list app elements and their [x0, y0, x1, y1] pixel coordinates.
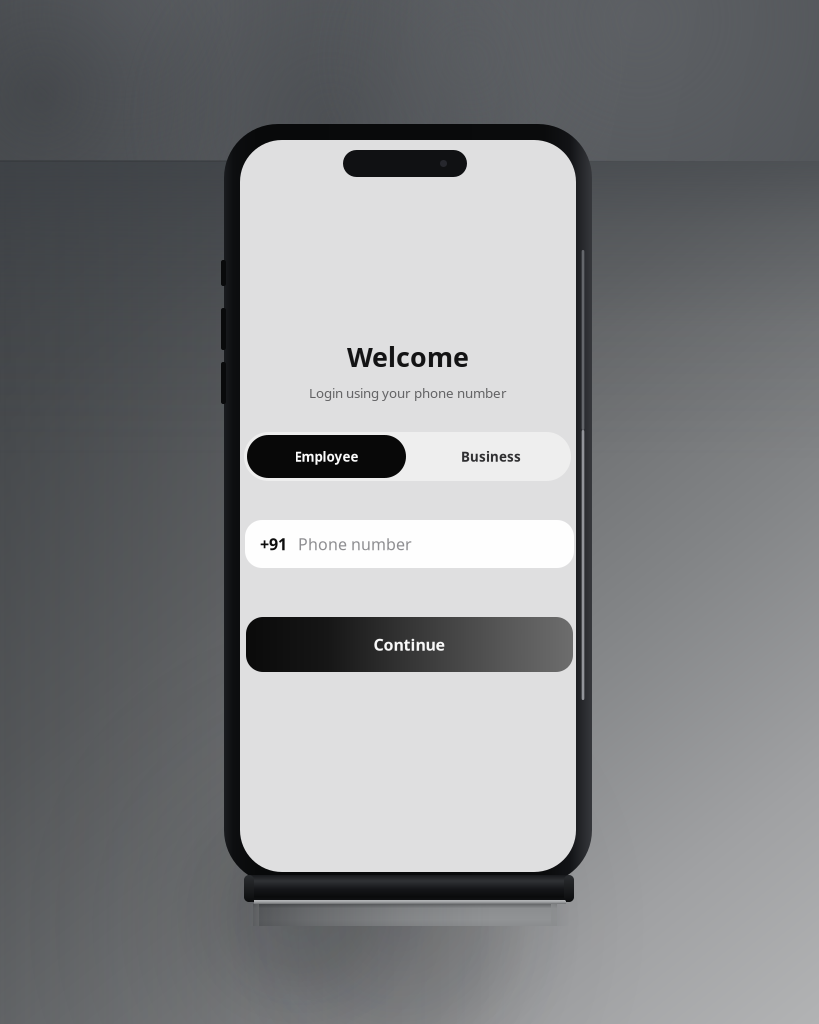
button[interactable]: Employee — [247, 435, 406, 478]
staticText: Employee — [294, 448, 358, 465]
staticText: Business — [461, 448, 521, 465]
staticText: Login using your phone number — [309, 384, 507, 402]
staticText: Continue — [373, 634, 445, 655]
staticText: +91 — [260, 533, 287, 555]
staticText: Welcome — [347, 339, 469, 374]
button[interactable]: Continue — [246, 617, 573, 672]
button[interactable]: Business — [406, 435, 576, 478]
staticText: Phone number — [298, 533, 412, 555]
